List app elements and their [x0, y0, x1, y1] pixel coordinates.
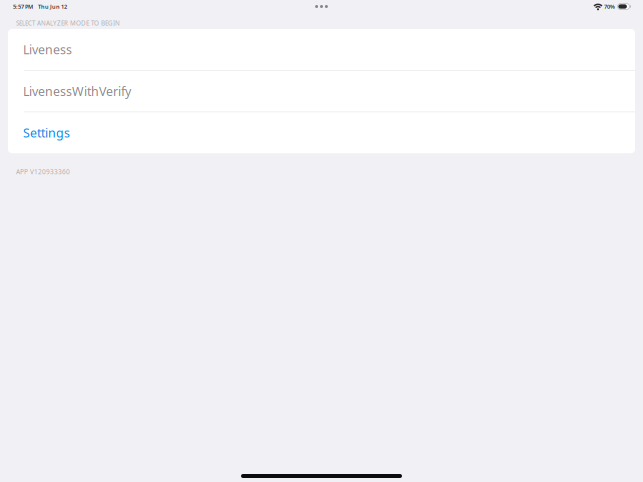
staticText: 5:57 PM	[13, 3, 33, 10]
button[interactable]: Liveness	[8, 29, 635, 70]
staticText: Thu Jun 12	[38, 3, 67, 10]
button[interactable]: Settings	[8, 112, 635, 153]
staticText: SELECT ANALYZER MODE TO BEGIN	[16, 19, 120, 27]
button[interactable]: Multitasking Controls	[304, 0, 338, 13]
staticText: LivenessWithVerify	[23, 83, 131, 100]
staticText: Liveness	[23, 41, 72, 58]
staticText: Settings	[23, 124, 70, 141]
staticText: 70%	[604, 3, 615, 10]
staticText: APP V120933360	[16, 167, 70, 176]
button[interactable]: LivenessWithVerify	[8, 71, 635, 112]
